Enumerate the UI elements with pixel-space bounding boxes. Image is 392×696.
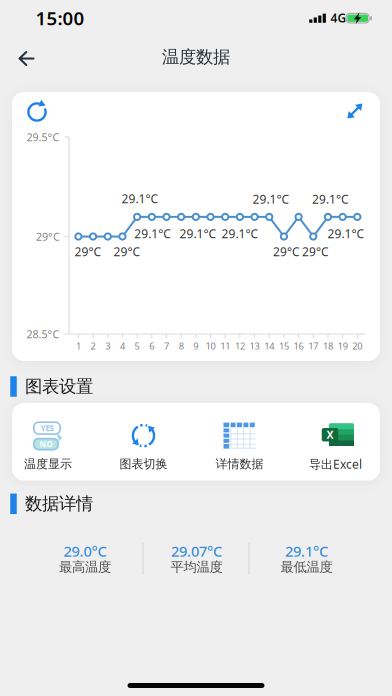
staticText: 29.1°C [121,190,158,206]
button[interactable]: YES [1,411,95,481]
staticText: 29.1°C [179,225,216,241]
staticText: 29°C [273,243,300,259]
staticText: 29.1°C [327,225,364,241]
staticText: 10 [205,340,215,352]
button[interactable]: 详情数据 [192,411,286,481]
staticText: 17 [308,340,318,352]
staticText: 图表切换 [119,457,167,471]
staticText: 19 [338,340,348,352]
staticText: 11 [220,340,230,352]
button[interactable]: X [288,411,382,481]
staticText: 20 [352,340,362,352]
staticText: 详情数据 [215,457,263,471]
staticText: 18 [323,340,333,352]
staticText: 16 [294,340,304,352]
staticText: 温度显示 [24,457,72,471]
staticText: X [326,428,333,442]
staticText: 3 [105,340,110,352]
staticText: 29.1°C [252,191,289,207]
button[interactable]: Back [4,35,48,79]
staticText: 15 [279,340,289,352]
staticText: 29°C [74,243,101,259]
staticText: 2 [91,340,96,352]
button[interactable]: 图表切换 [96,411,190,481]
staticText: 28.5°C [26,327,59,341]
staticText: 13 [250,340,260,352]
staticText: 最高温度 [59,559,111,575]
staticText: 7 [164,340,169,352]
staticText: 6 [149,340,154,352]
staticText: NO [39,439,52,449]
staticText: 4 [120,340,125,352]
staticText: 1 [76,340,81,352]
staticText: 9 [193,340,198,352]
button[interactable]: 全屏 [338,94,372,128]
staticText: 29.0°C [63,541,106,561]
staticText: 29°C [36,229,60,244]
staticText: 5 [135,340,140,352]
staticText: 29.07°C [171,541,222,561]
staticText: 29.5°C [26,130,59,144]
staticText: 29.1°C [285,541,328,561]
staticText: 4G [331,10,347,26]
staticText: 29°C [113,243,140,259]
staticText: 8 [179,340,184,352]
staticText: 最低温度 [280,559,332,575]
staticText: 平均温度 [170,559,222,575]
staticText: 12 [235,340,245,352]
staticText: 温度数据 [162,46,230,68]
staticText: 数据详情 [25,493,93,514]
staticText: 29.1°C [134,225,171,241]
staticText: YES [40,423,53,433]
staticText: 29.1°C [312,191,349,207]
button[interactable]: 刷新 [20,95,54,129]
staticText: 导出Excel [309,456,362,472]
staticText: 29.1°C [221,225,258,241]
staticText: 15:00 [35,6,84,30]
staticText: 29°C [302,243,329,259]
staticText: 图表设置 [25,376,93,397]
staticText: 14 [264,340,274,352]
